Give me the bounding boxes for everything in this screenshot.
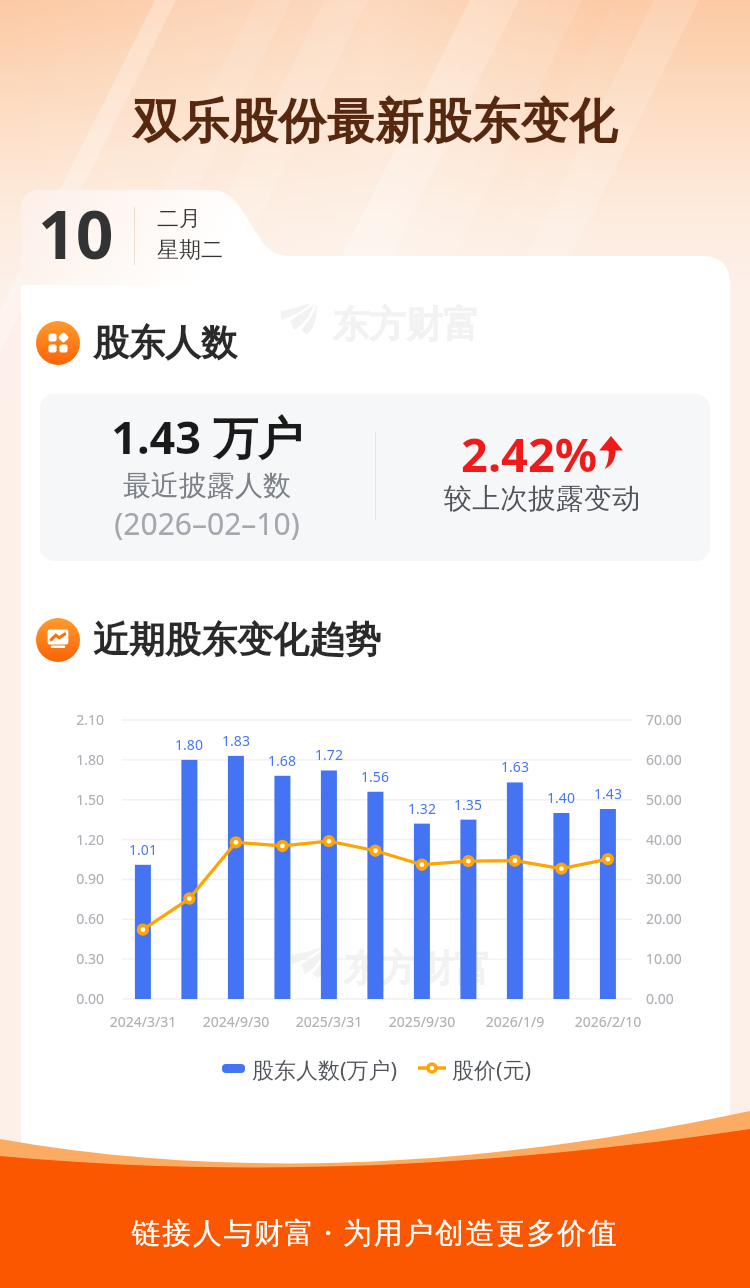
staticText: 0.00 xyxy=(30,989,104,1008)
staticText: 1.01 xyxy=(113,840,173,859)
button[interactable]: 近期股东变化趋势 xyxy=(36,617,389,662)
staticText: 链接人与财富 · 为用户创造更多价值 xyxy=(0,1212,750,1252)
staticText: 2024/9/30 xyxy=(176,1012,296,1031)
staticText: 较上次披露变动 xyxy=(392,481,692,516)
staticText: 星期二 xyxy=(157,236,223,264)
staticText: 近期股东变化趋势 xyxy=(93,617,381,662)
staticText: 1.63 xyxy=(485,757,545,776)
other: 近期股东变化趋势 xyxy=(36,618,80,662)
staticText: 二月 xyxy=(157,205,201,233)
staticText: 2025/3/31 xyxy=(269,1012,389,1031)
staticText: 40.00 xyxy=(646,830,682,849)
staticText: 东方财富 xyxy=(332,301,480,348)
staticText: 1.43 xyxy=(578,784,638,803)
staticText: 1.50 xyxy=(30,790,104,809)
staticText: 0.00 xyxy=(646,989,674,1008)
staticText: 2026/2/10 xyxy=(548,1012,668,1031)
staticText: 股价(元) xyxy=(452,1054,532,1084)
staticText: 2026/1/9 xyxy=(455,1012,575,1031)
staticText: 东方财富 xyxy=(343,945,491,992)
staticText: 0.30 xyxy=(30,949,104,968)
staticText: 2024/3/31 xyxy=(83,1012,203,1031)
staticText: 股东人数(万户) xyxy=(252,1054,398,1084)
staticText: 1.35 xyxy=(438,795,498,814)
staticText: 股东人数 xyxy=(93,320,237,365)
staticText: 2.10 xyxy=(30,710,104,729)
staticText: 1.56 xyxy=(345,767,405,786)
staticText: 1.40 xyxy=(531,788,591,807)
staticText: 60.00 xyxy=(646,750,682,769)
staticText: 0.90 xyxy=(30,869,104,888)
button[interactable]: 股东人数 xyxy=(36,320,245,365)
staticText: 双乐股份最新股东变化 xyxy=(0,92,750,152)
staticText: 50.00 xyxy=(646,790,682,809)
staticText: 10 xyxy=(38,188,114,278)
staticText: 最近披露人数 xyxy=(57,468,357,503)
staticText: 20.00 xyxy=(646,909,682,928)
staticText: 30.00 xyxy=(646,869,682,888)
staticText: 1.83 xyxy=(206,731,266,750)
staticText: 1.80 xyxy=(159,735,219,754)
staticText: 70.00 xyxy=(646,710,682,729)
other: 股东人数 xyxy=(36,321,80,365)
button[interactable]: 1.43 万户 xyxy=(40,394,710,561)
staticText: 1.20 xyxy=(30,830,104,849)
staticText: (2026–02–10) xyxy=(57,503,357,544)
staticText: 1.32 xyxy=(392,799,452,818)
staticText: 1.43 万户 xyxy=(57,406,357,467)
staticText: 1.72 xyxy=(299,745,359,764)
staticText: 0.60 xyxy=(30,909,104,928)
staticText: 2025/9/30 xyxy=(362,1012,482,1031)
staticText: 2.42% xyxy=(461,422,598,486)
staticText: 10.00 xyxy=(646,949,682,968)
staticText: 1.80 xyxy=(30,750,104,769)
staticText: 1.68 xyxy=(252,751,312,770)
